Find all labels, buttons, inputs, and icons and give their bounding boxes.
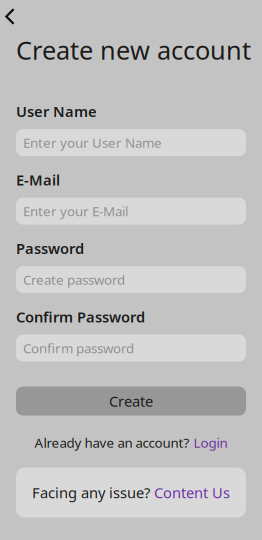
staticText: Create xyxy=(109,391,153,411)
staticText: Enter your E-Mail xyxy=(23,202,128,220)
staticText: Facing any issue? xyxy=(32,483,150,502)
button[interactable]: Confirm password xyxy=(16,335,246,362)
staticText: E-Mail xyxy=(16,170,60,190)
staticText: Confirm password xyxy=(23,339,134,357)
staticText: User Name xyxy=(16,102,97,121)
button[interactable]: Facing any issue? xyxy=(16,468,246,518)
button[interactable]: Create password xyxy=(16,266,246,293)
button[interactable]: Create xyxy=(16,387,246,416)
staticText: Content Us xyxy=(154,483,230,502)
staticText: Enter your User Name xyxy=(23,134,162,151)
staticText: Login xyxy=(193,434,227,451)
button[interactable]: Already have an account? xyxy=(0,433,262,453)
staticText: Already have an account? xyxy=(34,434,189,451)
staticText: Create password xyxy=(23,271,125,288)
staticText: Confirm Password xyxy=(16,307,145,327)
button[interactable]: Enter your E-Mail xyxy=(16,198,246,225)
staticText: Password xyxy=(16,239,84,258)
staticText: Create new account xyxy=(16,33,251,67)
button[interactable]: Enter your User Name xyxy=(16,129,246,156)
button[interactable]: Back xyxy=(0,0,25,29)
